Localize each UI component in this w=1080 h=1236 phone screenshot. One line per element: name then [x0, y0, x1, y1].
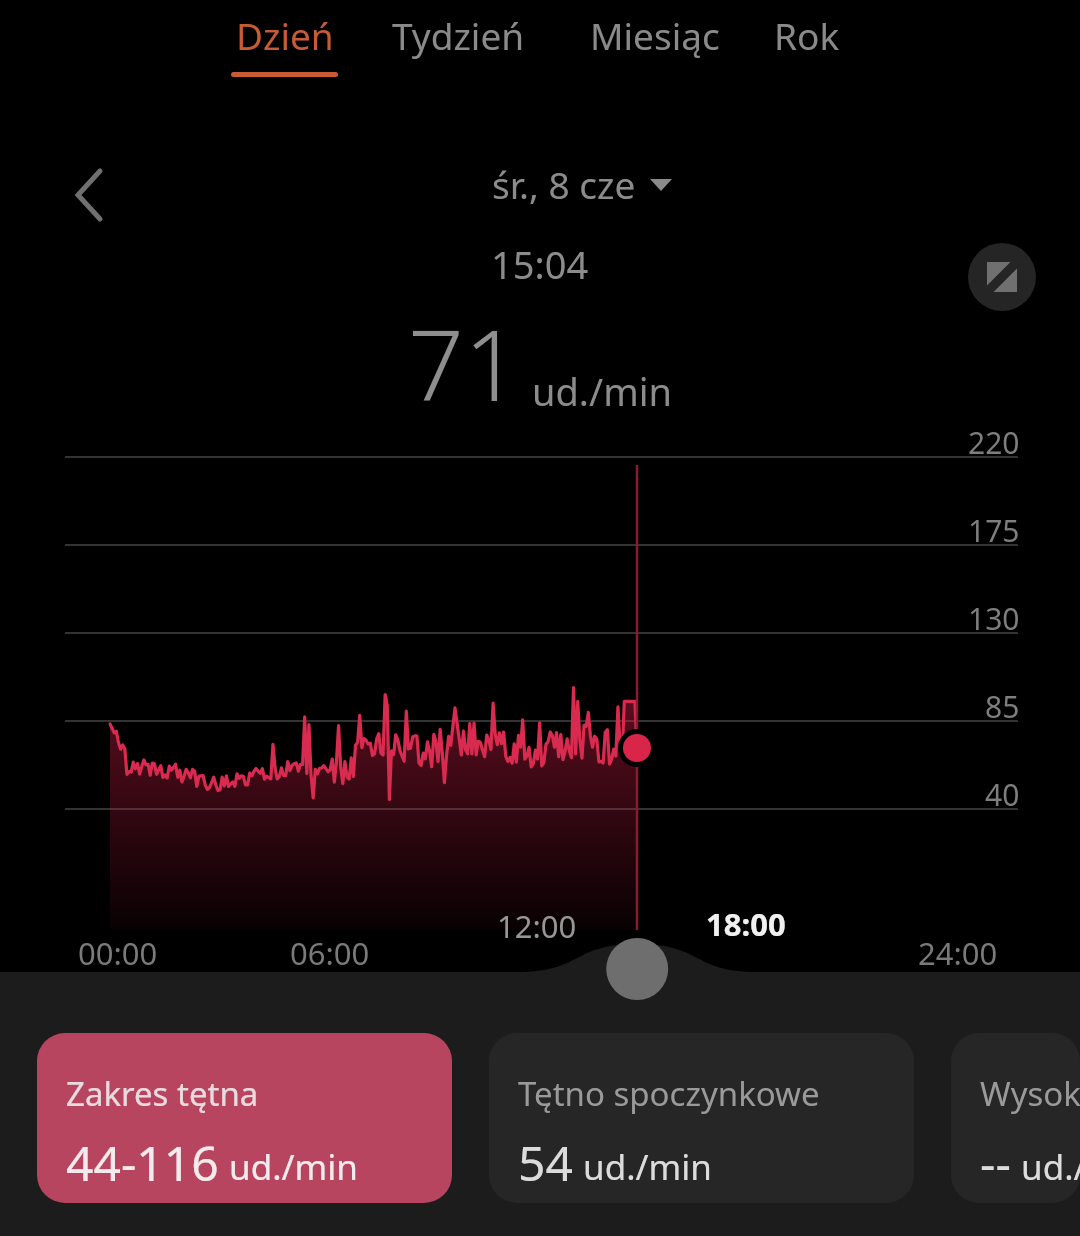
- staticText: Zakres tętna: [66, 1071, 259, 1116]
- button[interactable]: Pełny ekran: [968, 243, 1036, 311]
- button[interactable]: Rok: [772, 0, 842, 92]
- staticText: ud./min: [583, 1143, 712, 1191]
- staticText: 130: [968, 598, 1020, 639]
- staticText: 12:00: [497, 905, 577, 947]
- button[interactable]: Tętno spoczynkowe: [489, 1033, 914, 1203]
- staticText: śr., 8 cze: [492, 159, 636, 209]
- staticText: 220: [968, 422, 1020, 463]
- staticText: ud./: [1021, 1143, 1080, 1191]
- staticText: 18:00: [706, 903, 786, 945]
- staticText: Miesiąc: [590, 10, 720, 60]
- staticText: 15:04: [491, 238, 589, 290]
- staticText: 85: [985, 686, 1020, 727]
- staticText: 06:00: [290, 932, 370, 974]
- staticText: Rok: [774, 10, 840, 60]
- button[interactable]: Miesiąc: [582, 0, 727, 92]
- staticText: 40: [985, 774, 1020, 815]
- staticText: 54: [518, 1130, 573, 1195]
- staticText: Dzień: [236, 10, 334, 60]
- staticText: Tętno spoczynkowe: [518, 1071, 820, 1116]
- button[interactable]: śr., 8 cze: [492, 159, 672, 209]
- staticText: Tydzień: [392, 10, 525, 60]
- staticText: ud./min: [532, 365, 672, 417]
- button[interactable]: Tydzień: [388, 0, 528, 92]
- button[interactable]: Dzień: [231, 0, 338, 92]
- button[interactable]: Zakres tętna: [37, 1033, 452, 1203]
- button[interactable]: Wysoki: [951, 1033, 1080, 1203]
- staticText: 44-116: [66, 1130, 219, 1195]
- staticText: Wysoki: [980, 1071, 1080, 1116]
- staticText: 175: [968, 510, 1020, 551]
- staticText: --: [980, 1130, 1011, 1195]
- staticText: ud./min: [229, 1143, 358, 1191]
- button[interactable]: Poprzedni dzień: [50, 155, 130, 235]
- staticText: 24:00: [918, 932, 998, 974]
- staticText: 00:00: [78, 932, 158, 974]
- staticText: 71: [408, 296, 520, 429]
